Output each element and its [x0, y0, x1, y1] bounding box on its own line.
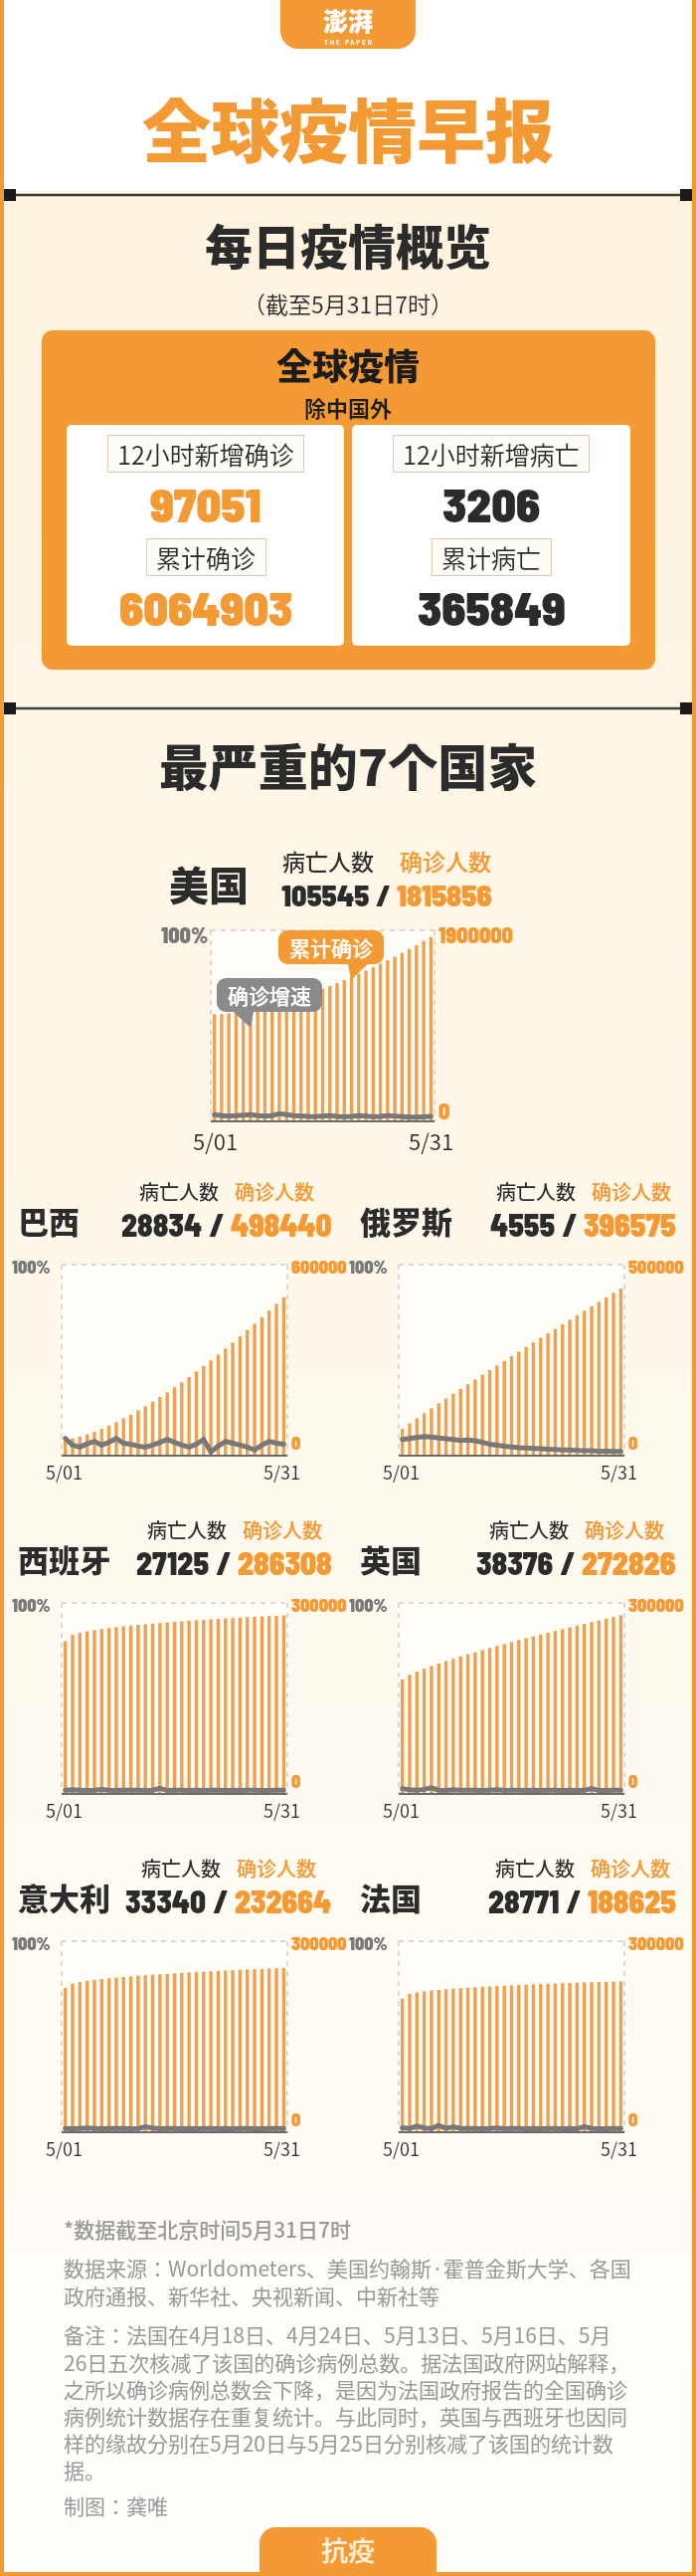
staticText: 巴西 [18, 1198, 80, 1243]
staticText: 100% [349, 1594, 388, 1616]
staticText: 英国 [360, 1536, 422, 1581]
staticText: 5/31 [409, 1124, 454, 1154]
staticText: 确诊人数 [243, 1515, 322, 1544]
staticText: 5/01 [46, 2135, 84, 2161]
staticText: 确诊人数 [235, 1177, 314, 1206]
staticText: 病亡人数 [147, 1515, 227, 1544]
staticText: 5/31 [601, 1797, 638, 1823]
staticText: 33340 [125, 1882, 207, 1919]
staticText: 188625 [588, 1882, 676, 1919]
staticText: 0 [438, 1097, 450, 1123]
staticText: 5/01 [383, 2135, 421, 2161]
staticText: 272826 [582, 1544, 676, 1581]
staticText: 5/01 [46, 1797, 84, 1823]
staticText: 5/01 [193, 1124, 239, 1154]
staticText: 100% [12, 1594, 51, 1616]
staticText: （截至5月31日7时） [243, 287, 454, 319]
staticText: 1815856 [397, 877, 492, 912]
staticText: 0 [291, 1770, 301, 1792]
button[interactable]: 抗疫 [260, 2527, 436, 2572]
staticText: THE PAPER [324, 38, 374, 47]
staticText: 澎湃 [323, 2, 374, 38]
staticText: 0 [291, 2108, 301, 2130]
button[interactable]: 12小时新增确诊 [67, 425, 344, 646]
staticText: 每日疫情概览 [205, 209, 492, 279]
staticText: 5/31 [601, 2135, 638, 2161]
staticText: 制图：龚唯 [64, 2490, 168, 2520]
staticText: 286308 [238, 1544, 332, 1581]
staticText: 美国 [169, 855, 249, 912]
staticText: 28834 [121, 1206, 203, 1243]
staticText: / [560, 1882, 588, 1919]
staticText: 5/31 [263, 1797, 301, 1823]
staticText: 600000 [291, 1256, 347, 1278]
staticText: 病亡人数 [282, 844, 374, 877]
staticText: 300000 [291, 1594, 347, 1616]
staticText: / [370, 877, 397, 912]
staticText: 确诊人数 [591, 1854, 670, 1882]
staticText: 100% [12, 1256, 51, 1278]
staticText: 100% [161, 921, 209, 947]
staticText: 全球疫情早报 [142, 78, 554, 177]
staticText: 俄罗斯 [360, 1198, 452, 1243]
staticText: 确诊人数 [592, 1177, 671, 1206]
staticText: 西班牙 [18, 1536, 110, 1581]
staticText: 0 [628, 1770, 638, 1792]
staticText: 28771 [488, 1882, 560, 1919]
staticText: 累计病亡 [441, 539, 542, 575]
staticText: 确诊增速 [228, 980, 311, 1010]
staticText: 100% [349, 1256, 388, 1278]
staticText: 病亡人数 [141, 1854, 221, 1882]
staticText: 3206 [442, 475, 541, 532]
staticText: 300000 [628, 1932, 684, 1954]
staticText: 12小时新增病亡 [403, 436, 580, 472]
staticText: 法国 [360, 1875, 422, 1919]
staticText: / [210, 1544, 238, 1581]
staticText: 38376 [476, 1544, 554, 1581]
staticText: 5/31 [601, 1459, 638, 1485]
staticText: 4555 [490, 1206, 556, 1243]
staticText: 备注：法国在4月18日、4月24日、5月13日、5月16日、5月26日五次核减了… [64, 2319, 632, 2484]
staticText: 300000 [628, 1594, 684, 1616]
staticText: 5/31 [263, 2135, 301, 2161]
staticText: 500000 [628, 1256, 684, 1278]
staticText: / [554, 1544, 582, 1581]
staticText: 5/01 [46, 1459, 84, 1485]
staticText: 105545 [281, 877, 370, 912]
staticText: 病亡人数 [139, 1177, 219, 1206]
staticText: / [203, 1206, 231, 1243]
staticText: 100% [12, 1932, 51, 1954]
staticText: 0 [628, 1432, 638, 1454]
staticText: 0 [628, 2108, 638, 2130]
staticText: 0 [291, 1432, 301, 1454]
staticText: 1900000 [438, 921, 513, 947]
staticText: 396575 [584, 1206, 676, 1243]
staticText: *数据截至北京时间5月31日7时 [64, 2214, 352, 2244]
staticText: 365849 [418, 578, 566, 636]
staticText: 意大利 [18, 1875, 110, 1919]
staticText: 5/01 [383, 1797, 421, 1823]
staticText: 6064903 [119, 578, 293, 636]
staticText: 97051 [150, 475, 261, 532]
staticText: 病亡人数 [496, 1177, 576, 1206]
staticText: 病亡人数 [495, 1854, 575, 1882]
staticText: 300000 [291, 1932, 347, 1954]
staticText: 抗疫 [321, 2530, 375, 2569]
staticText: 5/01 [383, 1459, 421, 1485]
staticText: 确诊人数 [585, 1515, 664, 1544]
staticText: 232664 [235, 1882, 332, 1919]
staticText: / [207, 1882, 235, 1919]
button[interactable]: 全球疫情 [42, 330, 655, 670]
staticText: 累计确诊 [289, 932, 373, 962]
staticText: 除中国外 [304, 391, 393, 423]
staticText: 498440 [231, 1206, 332, 1243]
staticText: 5/31 [263, 1459, 301, 1485]
button[interactable]: The Paper logo [280, 0, 416, 49]
staticText: 确诊人数 [400, 844, 491, 877]
staticText: / [556, 1206, 584, 1243]
staticText: 100% [349, 1932, 388, 1954]
staticText: 全球疫情 [276, 338, 421, 390]
staticText: 12小时新增确诊 [117, 436, 294, 472]
staticText: 最严重的7个国家 [4, 728, 692, 800]
button[interactable]: 12小时新增病亡 [352, 425, 630, 646]
